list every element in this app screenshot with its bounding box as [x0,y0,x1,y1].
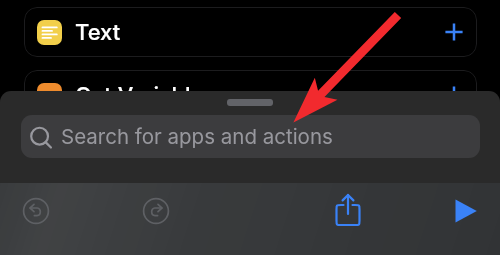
button[interactable]: Redo [134,189,178,233]
button[interactable]: Get Variable [24,70,477,120]
staticText: Get Variable [75,82,204,109]
button[interactable]: Search for apps and actions [21,115,480,158]
button[interactable]: Undo [14,189,58,233]
staticText: Search for apps and actions [61,124,333,149]
button[interactable]: Run [444,189,488,233]
staticText: Text [75,19,121,46]
button[interactable]: Share [326,189,370,233]
button[interactable]: Add action [437,78,471,112]
button[interactable]: Text [24,7,477,57]
button[interactable]: Add action [437,15,471,49]
